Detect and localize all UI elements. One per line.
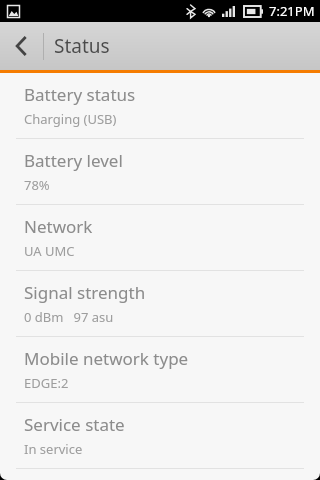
staticText: EDGE:2 (24, 374, 69, 392)
button[interactable]: Network (0, 205, 320, 270)
staticText: In service (24, 440, 83, 458)
button[interactable]: Signal strength (0, 271, 320, 336)
staticText: Battery level (24, 149, 123, 172)
staticText: Service state (24, 413, 125, 436)
staticText: 7:21PM (269, 2, 315, 20)
button[interactable]: Back (0, 22, 43, 70)
staticText: Signal strength (24, 281, 146, 304)
staticText: 0 dBm 97 asu (24, 308, 114, 326)
staticText: Network (24, 215, 93, 238)
staticText: 78% (24, 176, 50, 194)
staticText: Charging (USB) (24, 110, 117, 128)
staticText: UA UMC (24, 242, 75, 260)
button[interactable]: Battery status (0, 73, 320, 138)
button[interactable]: Battery level (0, 139, 320, 204)
staticText: Battery status (24, 83, 136, 106)
button[interactable]: Service state (0, 403, 320, 468)
staticText: Mobile network type (24, 347, 189, 370)
button[interactable]: Mobile network type (0, 337, 320, 402)
staticText: Status (54, 33, 110, 59)
